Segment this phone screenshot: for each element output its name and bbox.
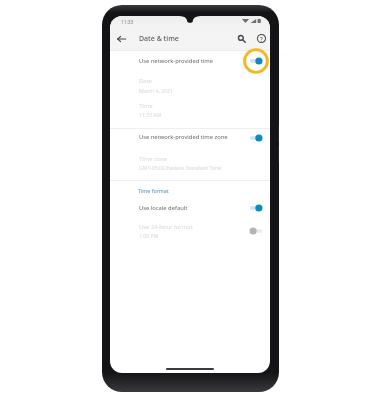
button[interactable]: On (242, 125, 270, 151)
staticText: 11:33 (121, 19, 134, 26)
staticText: 1:00 PM (139, 232, 159, 239)
button[interactable]: Off (242, 218, 270, 244)
staticText: Use locale default (139, 204, 188, 212)
button[interactable]: Help (254, 31, 269, 46)
button[interactable]: Search (234, 31, 249, 46)
staticText: Time format (138, 187, 169, 194)
button[interactable]: On (242, 48, 270, 74)
staticText: 11:33 AM (139, 111, 162, 118)
staticText: Use network-provided time (139, 57, 214, 65)
button[interactable]: Navigate up (114, 31, 129, 46)
staticText: Time (139, 102, 153, 110)
staticText: Use 24-hour format (139, 223, 193, 231)
staticText: Date (139, 77, 152, 85)
staticText: GMT-05:00 Eastern Standard Time (139, 164, 221, 171)
staticText: March 4, 2021 (139, 87, 173, 94)
staticText: Use network-provided time zone (139, 133, 228, 141)
staticText: ? (260, 35, 263, 43)
button[interactable]: On (242, 195, 270, 221)
staticText: Time zone (139, 155, 167, 163)
staticText: Date & time (139, 34, 179, 44)
